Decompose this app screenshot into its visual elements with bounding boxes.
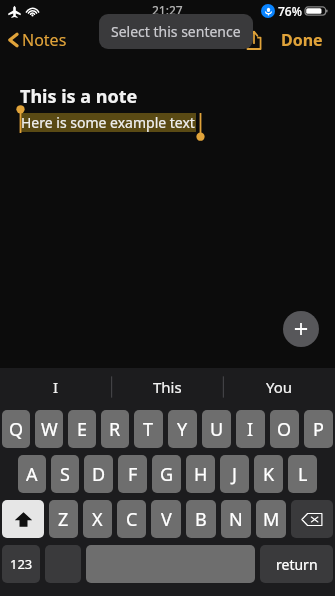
staticText: U xyxy=(210,417,224,442)
button[interactable]: This xyxy=(111,368,223,406)
staticText: You xyxy=(266,377,293,397)
staticText: 21:27 xyxy=(152,2,183,18)
button[interactable]: K xyxy=(254,455,283,493)
button[interactable]: I xyxy=(0,368,111,406)
button[interactable]: N xyxy=(221,500,251,538)
button[interactable]: Notes xyxy=(4,25,71,55)
staticText: Notes xyxy=(22,29,67,51)
staticText: return xyxy=(276,555,318,574)
button[interactable]: X xyxy=(83,500,112,538)
button[interactable]: I xyxy=(236,410,265,448)
staticText: D xyxy=(92,462,106,487)
button[interactable]: Share xyxy=(239,25,269,55)
staticText: 123 xyxy=(10,555,33,573)
staticText: P xyxy=(313,417,324,442)
staticText: Select this sentence xyxy=(111,22,241,41)
button[interactable]: return xyxy=(260,545,333,583)
staticText: N xyxy=(229,507,243,532)
button[interactable]: Emoji xyxy=(45,545,81,583)
button[interactable]: New note xyxy=(283,311,319,347)
button[interactable]: A xyxy=(18,455,46,493)
button[interactable]: V xyxy=(151,500,181,538)
button[interactable]: O xyxy=(270,410,299,448)
staticText: I xyxy=(247,417,254,442)
button[interactable]: Z xyxy=(49,500,78,538)
staticText: E xyxy=(77,417,88,442)
button[interactable]: F xyxy=(118,455,147,493)
button[interactable]: T xyxy=(134,410,163,448)
staticText: H xyxy=(194,462,208,487)
button[interactable]: J xyxy=(220,455,249,493)
button[interactable]: U xyxy=(202,410,231,448)
staticText: Done xyxy=(281,29,323,51)
staticText: J xyxy=(232,462,237,487)
button[interactable]: R xyxy=(101,410,129,448)
button[interactable]: G xyxy=(152,455,181,493)
staticText: Q xyxy=(9,417,24,442)
staticText: X xyxy=(92,507,103,532)
staticText: T xyxy=(143,417,154,442)
button[interactable]: Q xyxy=(2,410,30,448)
staticText: L xyxy=(298,462,308,487)
staticText: M xyxy=(263,507,280,532)
button[interactable]: 123 xyxy=(2,545,40,583)
staticText: Here is some example text xyxy=(21,113,195,132)
button[interactable]: P xyxy=(304,410,333,448)
staticText: S xyxy=(60,462,70,487)
button[interactable]: M xyxy=(256,500,286,538)
button[interactable]: B xyxy=(186,500,216,538)
staticText: W xyxy=(41,417,58,442)
button[interactable]: S xyxy=(51,455,79,493)
button[interactable]: Select this sentence xyxy=(99,14,253,49)
button[interactable]: E xyxy=(68,410,96,448)
staticText: Y xyxy=(177,417,188,442)
button[interactable]: L xyxy=(288,455,317,493)
button[interactable]: C xyxy=(117,500,146,538)
button[interactable]: D xyxy=(84,455,113,493)
staticText: C xyxy=(126,507,138,532)
button[interactable]: Done xyxy=(275,25,329,55)
staticText: B xyxy=(195,507,207,532)
staticText: V xyxy=(161,507,172,532)
staticText: I xyxy=(53,377,59,397)
button[interactable]: W xyxy=(35,410,63,448)
staticText: G xyxy=(160,462,174,487)
staticText: Z xyxy=(58,507,69,532)
staticText: K xyxy=(263,462,275,487)
button[interactable]: You xyxy=(223,368,335,406)
staticText: A xyxy=(26,462,38,487)
button[interactable]: Space xyxy=(86,545,255,583)
staticText: F xyxy=(128,462,138,487)
staticText: O xyxy=(277,417,292,442)
button[interactable]: H xyxy=(186,455,215,493)
button[interactable]: Y xyxy=(168,410,197,448)
button[interactable]: Backspace xyxy=(291,500,333,538)
staticText: 76% xyxy=(278,3,302,19)
staticText: This xyxy=(153,377,182,397)
staticText: R xyxy=(109,417,121,442)
staticText: This is a note xyxy=(20,84,138,109)
button[interactable]: Shift xyxy=(2,500,44,538)
